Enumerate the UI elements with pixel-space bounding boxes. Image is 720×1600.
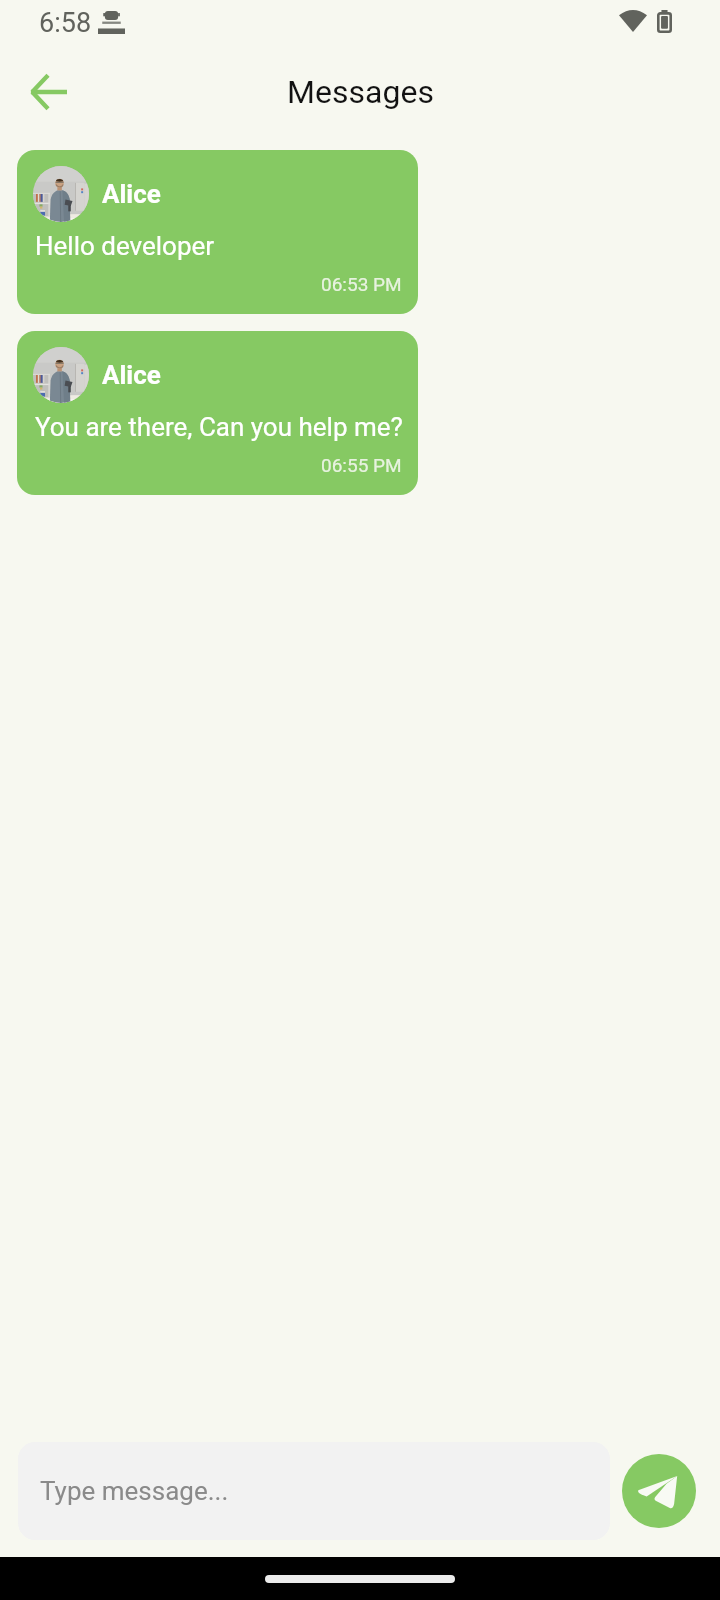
staticText: You are there, Can you help me? (35, 412, 403, 442)
staticText: Messages (287, 73, 434, 111)
button[interactable]: Type message... (18, 1442, 610, 1540)
staticText: Alice (102, 179, 161, 209)
staticText: Hello developer (35, 231, 215, 261)
button[interactable]: Alice (17, 150, 418, 314)
staticText: 6:58 (39, 7, 92, 39)
button[interactable]: Back (16, 59, 80, 123)
staticText: Alice (102, 360, 161, 390)
staticText: 06:53 PM (321, 273, 402, 295)
staticText: 06:55 PM (321, 454, 402, 476)
staticText: Type message... (40, 1476, 229, 1506)
button[interactable]: Send (622, 1454, 696, 1528)
button[interactable]: Alice (17, 331, 418, 495)
